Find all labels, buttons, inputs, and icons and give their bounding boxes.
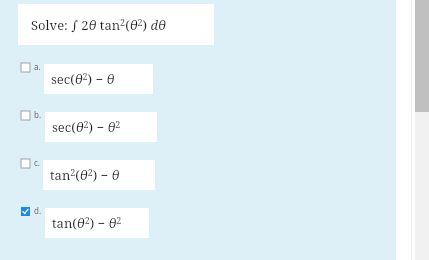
staticText: a.: [34, 61, 41, 72]
staticText: d.: [34, 205, 42, 216]
button[interactable]: Selected answer: [21, 207, 30, 216]
button[interactable]: Select answer: [21, 111, 30, 120]
staticText: tan2(θ2) − θ: [50, 166, 120, 184]
button[interactable]: Select answer: [21, 159, 30, 168]
button[interactable]: Select answer: [0, 154, 155, 184]
staticText: tan(θ2) − θ2: [52, 214, 122, 232]
staticText: c.: [34, 157, 40, 168]
staticText: sec(θ2) − θ: [51, 70, 115, 88]
button[interactable]: Select answer: [0, 58, 153, 88]
button[interactable]: Select answer: [21, 63, 30, 72]
staticText: Solve: ∫ 2θ tan2(θ2) dθ: [31, 16, 166, 34]
button[interactable]: Selected answer: [0, 202, 149, 232]
staticText: b.: [34, 109, 42, 120]
button[interactable]: Select answer: [0, 106, 157, 136]
staticText: sec(θ2) − θ2: [52, 118, 121, 136]
